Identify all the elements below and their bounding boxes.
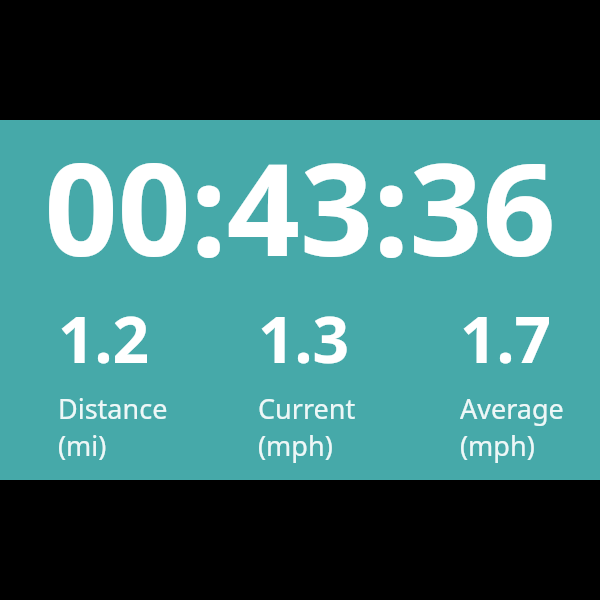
button[interactable]: Current speed 1.3 miles per hour	[258, 295, 460, 464]
staticText: 00:43:36	[44, 119, 556, 293]
button[interactable]: Average speed 1.7 miles per hour	[460, 295, 600, 464]
staticText: Average	[460, 390, 564, 427]
staticText: Current	[258, 390, 356, 427]
staticText: (mph)	[258, 427, 333, 464]
staticText: Distance	[58, 390, 168, 427]
staticText: 1.2	[58, 295, 150, 382]
staticText: (mph)	[460, 427, 535, 464]
staticText: 1.3	[258, 295, 350, 382]
button[interactable]: 00:43:36	[0, 120, 600, 295]
staticText: (mi)	[58, 427, 107, 464]
staticText: 1.7	[460, 295, 552, 382]
button[interactable]: Distance 1.2 miles	[58, 295, 258, 464]
